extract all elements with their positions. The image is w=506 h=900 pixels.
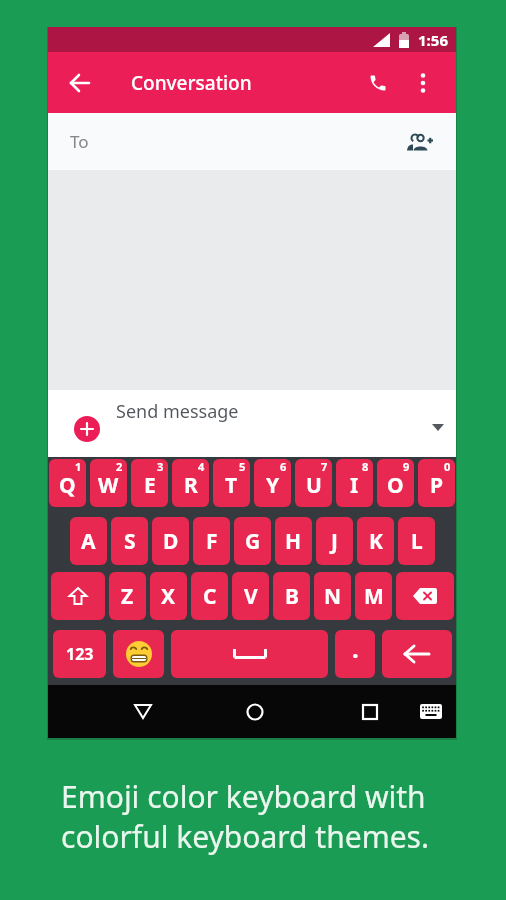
- staticText: X: [161, 582, 176, 611]
- button[interactable]: I: [336, 459, 373, 507]
- button[interactable]: [382, 630, 452, 678]
- button[interactable]: [233, 685, 277, 738]
- button[interactable]: [113, 630, 164, 678]
- button[interactable]: R: [172, 459, 209, 507]
- button[interactable]: T: [213, 459, 250, 507]
- button[interactable]: J: [316, 517, 353, 565]
- button[interactable]: L: [398, 517, 435, 565]
- staticText: Q: [59, 471, 76, 500]
- staticText: D: [163, 527, 179, 556]
- staticText: B: [285, 582, 299, 611]
- staticText: 5: [239, 459, 246, 474]
- staticText: 7: [321, 459, 328, 474]
- staticText: T: [225, 471, 238, 500]
- button[interactable]: K: [357, 517, 394, 565]
- button[interactable]: .: [335, 630, 375, 678]
- button[interactable]: [400, 52, 446, 113]
- staticText: U: [306, 471, 322, 500]
- staticText: A: [81, 527, 96, 556]
- staticText: R: [184, 471, 198, 500]
- staticText: M: [364, 582, 384, 611]
- button[interactable]: Q: [49, 459, 86, 507]
- button[interactable]: [396, 572, 454, 620]
- staticText: 3: [157, 459, 164, 474]
- staticText: Conversation: [131, 70, 252, 96]
- button[interactable]: [171, 630, 328, 678]
- button[interactable]: Z: [109, 572, 146, 620]
- staticText: 9: [403, 459, 410, 474]
- staticText: 0: [444, 459, 451, 474]
- staticText: J: [331, 527, 338, 556]
- button[interactable]: M: [355, 572, 392, 620]
- staticText: V: [244, 582, 258, 611]
- staticText: 1: [75, 459, 82, 474]
- button[interactable]: N: [314, 572, 351, 620]
- button[interactable]: 123: [53, 630, 106, 678]
- staticText: 123: [66, 643, 94, 665]
- button[interactable]: H: [275, 517, 312, 565]
- staticText: F: [206, 527, 218, 556]
- button[interactable]: [348, 685, 392, 738]
- staticText: P: [430, 471, 444, 500]
- staticText: 8: [362, 459, 369, 474]
- button[interactable]: [356, 52, 400, 113]
- staticText: S: [124, 527, 136, 556]
- staticText: H: [285, 527, 302, 556]
- staticText: 2: [116, 459, 123, 474]
- staticText: E: [144, 471, 156, 500]
- button[interactable]: F: [193, 517, 230, 565]
- staticText: G: [245, 527, 261, 556]
- button[interactable]: [51, 572, 105, 620]
- button[interactable]: B: [273, 572, 310, 620]
- button[interactable]: W: [90, 459, 127, 507]
- button[interactable]: A: [70, 517, 107, 565]
- staticText: N: [324, 582, 342, 611]
- staticText: 1:56: [418, 30, 448, 50]
- staticText: 4: [198, 459, 205, 474]
- button[interactable]: [121, 685, 165, 738]
- button[interactable]: Send message: [74, 390, 444, 457]
- staticText: Z: [121, 582, 134, 611]
- button[interactable]: U: [295, 459, 332, 507]
- button[interactable]: D: [152, 517, 189, 565]
- button[interactable]: G: [234, 517, 271, 565]
- staticText: Send message: [116, 399, 239, 424]
- staticText: L: [411, 527, 423, 556]
- button[interactable]: S: [111, 517, 148, 565]
- staticText: Emoji color keyboard with colorful keybo…: [61, 776, 430, 857]
- staticText: I: [350, 471, 359, 500]
- staticText: K: [369, 527, 383, 556]
- button[interactable]: P: [418, 459, 455, 507]
- button[interactable]: O: [377, 459, 414, 507]
- staticText: 6: [280, 459, 287, 474]
- staticText: To: [70, 130, 89, 153]
- staticText: Y: [266, 471, 280, 500]
- staticText: O: [387, 471, 404, 500]
- button[interactable]: V: [232, 572, 269, 620]
- staticText: W: [98, 471, 119, 500]
- button[interactable]: [402, 125, 436, 159]
- button[interactable]: X: [150, 572, 187, 620]
- staticText: .: [352, 632, 359, 665]
- button[interactable]: Y: [254, 459, 291, 507]
- button[interactable]: [410, 685, 452, 738]
- button[interactable]: E: [131, 459, 168, 507]
- staticText: C: [203, 582, 217, 611]
- button[interactable]: C: [191, 572, 228, 620]
- button[interactable]: [48, 52, 112, 113]
